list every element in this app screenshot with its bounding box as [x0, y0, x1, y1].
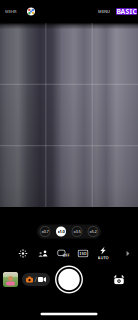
staticText: MEHR	[5, 9, 17, 14]
button[interactable]: x1.0	[53, 224, 69, 238]
button[interactable]: MEHR	[0, 2, 22, 20]
button[interactable]: Flash auto	[93, 243, 113, 263]
button[interactable]: More settings	[122, 243, 134, 263]
staticText: AUTO	[97, 255, 108, 260]
button[interactable]: x5.2	[85, 224, 101, 238]
staticText: ISO	[79, 251, 86, 256]
button[interactable]: x0.7	[37, 224, 53, 238]
button[interactable]: Photo or video	[22, 273, 50, 286]
staticText: /	[34, 275, 36, 284]
staticText: x1.0	[57, 229, 64, 234]
staticText: x0.7	[41, 229, 48, 234]
button[interactable]: BASIC	[115, 2, 138, 20]
button[interactable]: Take photo	[54, 264, 84, 294]
staticText: x3.5	[73, 229, 80, 234]
button[interactable]: Exposure	[13, 243, 33, 263]
button[interactable]: Photo library	[3, 272, 18, 287]
staticText: OFF	[62, 253, 69, 258]
staticText: BASIC	[116, 7, 136, 16]
staticText: x5.2	[89, 229, 96, 234]
staticText: MENU	[98, 9, 110, 14]
button[interactable]: Timer off	[53, 243, 73, 263]
button[interactable]: MENU	[93, 2, 115, 20]
button[interactable]: ISO	[73, 243, 93, 263]
button[interactable]: Switch camera	[109, 269, 129, 289]
button[interactable]: Filters	[22, 2, 40, 20]
button[interactable]: Portrait	[33, 243, 53, 263]
button[interactable]: x3.5	[69, 224, 85, 238]
